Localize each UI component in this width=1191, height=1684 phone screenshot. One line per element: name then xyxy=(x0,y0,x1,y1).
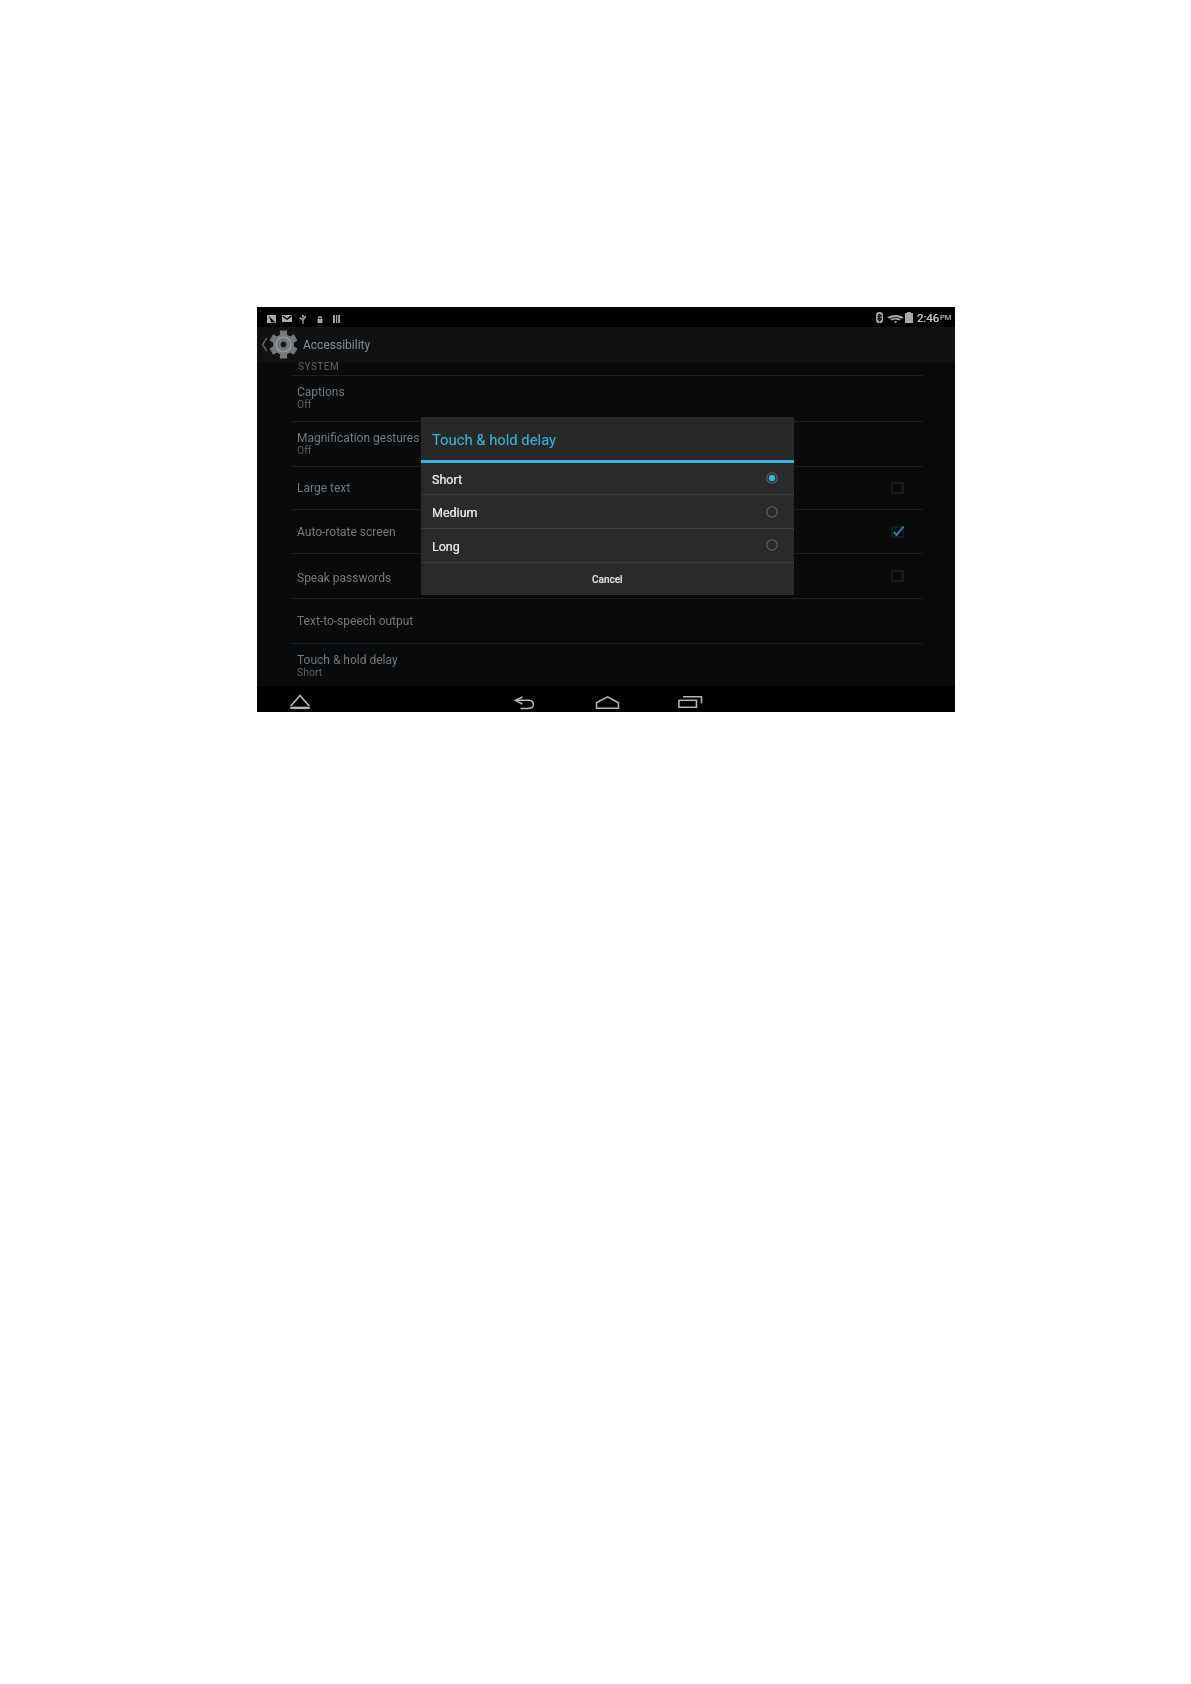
other: Off xyxy=(892,571,903,581)
button[interactable]: Captions xyxy=(257,376,955,420)
button[interactable]: Medium xyxy=(421,495,794,528)
staticText: SYSTEM xyxy=(298,362,340,373)
other: Off xyxy=(892,483,903,493)
button[interactable]: Auto-rotate screen xyxy=(257,510,955,553)
staticText: Captions xyxy=(297,385,345,399)
staticText: Magnification gestures xyxy=(297,431,420,445)
button[interactable]: Hide keyboard xyxy=(290,695,310,709)
staticText: Text-to-speech output xyxy=(297,614,414,628)
staticText: Long xyxy=(432,539,460,554)
button[interactable]: Recent apps xyxy=(678,696,703,708)
staticText: Off xyxy=(297,444,312,456)
staticText: Touch & hold delay xyxy=(432,431,557,448)
button[interactable]: Short xyxy=(421,462,794,494)
staticText: Short xyxy=(297,666,323,678)
button[interactable]: Large text xyxy=(257,467,955,510)
button[interactable]: Navigate up xyxy=(257,327,303,362)
staticText: Large text xyxy=(297,481,351,495)
button[interactable]: Magnification gestures xyxy=(257,422,955,466)
button[interactable]: Text-to-speech output xyxy=(257,599,955,643)
button[interactable]: Long xyxy=(421,529,794,561)
other: On xyxy=(892,527,903,537)
staticText: Auto-rotate screen xyxy=(297,525,396,539)
staticText: Off xyxy=(297,398,312,410)
staticText: Touch & hold delay xyxy=(297,653,398,667)
button[interactable]: Touch & hold delay xyxy=(257,644,955,686)
staticText: Cancel xyxy=(592,574,623,586)
staticText: PM xyxy=(940,313,952,322)
button[interactable]: Speak passwords xyxy=(257,554,955,597)
staticText: Medium xyxy=(432,505,478,520)
button[interactable]: Home xyxy=(595,696,620,709)
staticText: Short xyxy=(432,472,463,487)
button[interactable]: Cancel xyxy=(421,563,794,595)
staticText: 2:46 xyxy=(917,311,940,324)
button[interactable]: Back xyxy=(514,697,536,709)
staticText: Accessibility xyxy=(303,338,371,352)
staticText: Speak passwords xyxy=(297,571,392,585)
